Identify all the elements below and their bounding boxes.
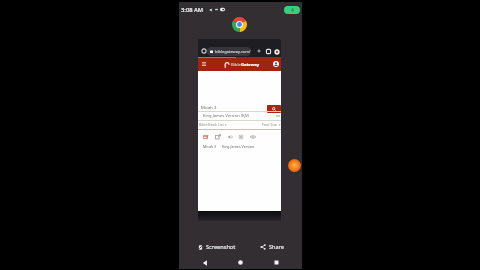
button[interactable]: Share — [260, 241, 285, 253]
staticText: ▾ — [279, 123, 281, 126]
staticText: Bible — [231, 62, 241, 68]
staticText: King James Version — [222, 144, 255, 149]
button[interactable]: Search with Google — [288, 159, 301, 172]
button[interactable]: Bible Book List — [199, 122, 227, 127]
staticText: Bible Book List — [199, 122, 224, 127]
staticText: Screenshot — [206, 243, 236, 251]
button[interactable]: Recent apps — [271, 257, 282, 268]
staticText: King James Version (KJV) — [203, 113, 250, 119]
staticText: ▾ — [225, 123, 227, 126]
button[interactable]: Hide — [250, 134, 256, 140]
button[interactable]: Search — [267, 105, 281, 113]
button[interactable]: Screenshot — [198, 241, 236, 253]
staticText: 3:08 AM — [181, 6, 204, 14]
button[interactable]: King James Version (KJV) — [198, 111, 281, 121]
staticText: 4 — [291, 7, 294, 14]
staticText: Gateway — [241, 62, 260, 68]
staticText: Font Size — [262, 122, 278, 127]
button[interactable]: Notes — [203, 134, 209, 140]
button[interactable]: Home — [235, 257, 246, 268]
staticText: Micah 3 — [201, 105, 217, 111]
button[interactable]: Settings — [238, 134, 244, 140]
button[interactable]: Open in new window — [215, 134, 221, 140]
button[interactable]: Address bar — [207, 47, 251, 56]
staticText: biblegateway.com/ — [215, 49, 251, 54]
button[interactable]: Listen — [227, 134, 233, 140]
button[interactable]: Font Size — [262, 122, 281, 127]
staticText: Micah 3 — [203, 144, 217, 149]
staticText: Share — [269, 243, 285, 251]
button[interactable]: Back — [199, 257, 210, 268]
